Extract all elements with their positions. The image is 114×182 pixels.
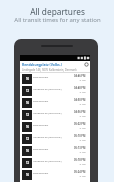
- staticText: -5 Min: [79, 139, 86, 142]
- staticText: 16: [26, 125, 29, 129]
- staticText: 16: [26, 77, 29, 81]
- staticText: -5 Min: [79, 175, 86, 178]
- staticText: -5 Min: [79, 103, 86, 106]
- button[interactable]: 16: [20, 73, 90, 85]
- staticText: 04:50 PM: [74, 98, 86, 102]
- button[interactable]: 12: [20, 157, 90, 169]
- staticText: -5 Min: [79, 127, 86, 130]
- staticText: 04:56 PM: [74, 110, 86, 114]
- staticText: Agnesviertel (Myrtenstr.): [33, 87, 62, 90]
- staticText: 16: [26, 173, 29, 177]
- staticText: 12: [26, 161, 29, 165]
- staticText: 05:10 PM: [74, 134, 86, 138]
- staticText: Rendsburgplatz (Volks.): [22, 62, 62, 67]
- button[interactable]: 16: [20, 121, 90, 133]
- staticText: Rathausplatz: [33, 99, 49, 102]
- staticText: -5 Min: [79, 91, 86, 94]
- staticText: 05:02 PM: [74, 122, 86, 126]
- staticText: Rathausplatz: [33, 171, 49, 174]
- staticText: Rathausplatz: [33, 123, 49, 126]
- staticText: Agnesviertel (Myrtenstr.): [33, 159, 62, 162]
- staticText: 05:13 PM: [74, 146, 86, 150]
- staticText: -5 Min: [79, 163, 86, 166]
- button[interactable]: 16: [20, 145, 90, 157]
- staticText: 12: [26, 137, 29, 141]
- staticText: Rathausplatz: [33, 75, 49, 78]
- staticText: 05:24 PM: [74, 170, 86, 174]
- staticText: 05:18 PM: [74, 158, 86, 162]
- staticText: -5 Min: [79, 151, 86, 154]
- staticText: -5 Min: [79, 79, 86, 82]
- staticText: 04:48 PM: [74, 86, 86, 90]
- staticText: All departures: [30, 6, 85, 17]
- staticText: Agnesviertel (Myrtenstr.): [33, 135, 62, 138]
- staticText: 16: [26, 101, 29, 105]
- button[interactable]: 12: [20, 109, 90, 121]
- button[interactable]: 12: [20, 133, 90, 145]
- staticText: 04:46 PM: [74, 74, 86, 78]
- button[interactable]: Refresh: [84, 62, 89, 67]
- staticText: 16: [26, 149, 29, 153]
- button[interactable]: 16: [20, 169, 90, 181]
- staticText: -5 Min: [79, 115, 86, 118]
- staticText: 12: [26, 113, 29, 117]
- staticText: All transit times for any station: [14, 16, 101, 24]
- staticText: 12: [26, 89, 29, 93]
- staticText: Lindegade 146, 5076 Kalkenstein, Denmark: [22, 68, 77, 72]
- staticText: Rathausplatz: [33, 147, 49, 150]
- button[interactable]: 16: [20, 97, 90, 109]
- button[interactable]: 12: [20, 85, 90, 97]
- staticText: Agnesviertel (Myrtenstr.): [33, 111, 62, 114]
